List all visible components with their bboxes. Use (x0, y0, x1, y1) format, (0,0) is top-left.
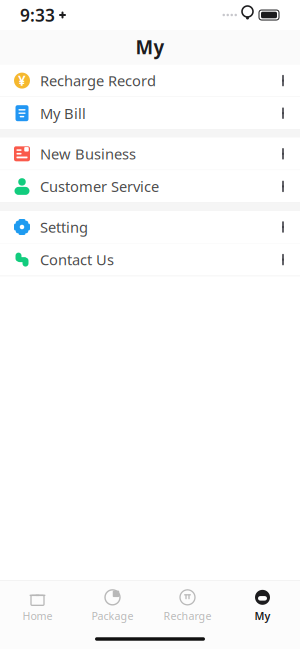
staticText: Package (91, 609, 133, 623)
staticText: 9:33 (20, 3, 55, 26)
button[interactable]: Contact Us (0, 244, 300, 276)
staticText: Setting (40, 217, 88, 237)
button[interactable]: Setting (0, 211, 300, 244)
staticText: Recharge Record (40, 71, 156, 90)
button[interactable]: Recharge (150, 581, 225, 629)
staticText: My Bill (40, 103, 86, 123)
button[interactable]: ¥ (0, 65, 300, 97)
staticText: ¥ (18, 72, 26, 89)
staticText: Recharge (163, 609, 211, 623)
button[interactable]: Customer Service (0, 170, 300, 203)
staticText: Home (22, 609, 52, 623)
staticText: Contact Us (40, 250, 114, 269)
button[interactable]: My Bill (0, 97, 300, 130)
staticText: Customer Service (40, 177, 159, 196)
button[interactable]: New Business (0, 138, 300, 170)
staticText: My (254, 609, 270, 623)
staticText: New Business (40, 144, 136, 164)
button[interactable]: Home (0, 581, 75, 629)
button[interactable]: Package (75, 581, 150, 629)
staticText: My (135, 35, 164, 59)
button[interactable]: My (225, 581, 300, 629)
